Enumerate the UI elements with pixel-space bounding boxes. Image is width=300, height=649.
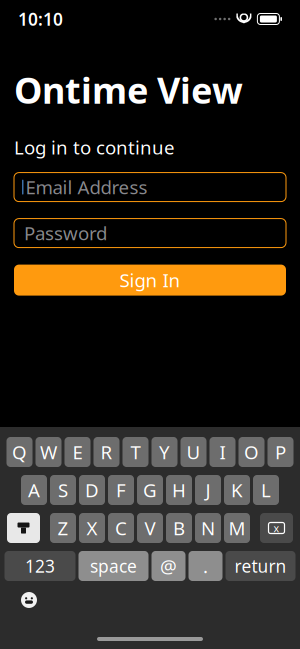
button[interactable]: Delete — [260, 513, 293, 543]
staticText: L — [261, 478, 271, 502]
button[interactable]: L — [253, 475, 279, 505]
staticText: H — [172, 478, 186, 502]
staticText: Password — [24, 221, 107, 245]
button[interactable]: R — [93, 437, 119, 467]
button[interactable]: P — [267, 437, 293, 467]
button[interactable]: B — [166, 513, 192, 543]
button[interactable]: Password — [14, 219, 286, 248]
staticText: C — [115, 516, 127, 540]
staticText: Y — [159, 440, 170, 464]
button[interactable]: Shift — [7, 513, 40, 543]
staticText: . — [203, 554, 208, 578]
button[interactable]: G — [137, 475, 163, 505]
button[interactable]: M — [224, 513, 250, 543]
button[interactable]: Emoji — [16, 587, 42, 613]
staticText: Sign In — [119, 268, 180, 292]
button[interactable]: V — [137, 513, 163, 543]
button[interactable]: N — [195, 513, 221, 543]
button[interactable]: T — [122, 437, 148, 467]
button[interactable]: Email Address — [14, 173, 286, 202]
staticText: I — [219, 440, 225, 464]
staticText: 123 — [25, 554, 55, 577]
staticText: V — [144, 516, 155, 540]
staticText: K — [231, 478, 243, 502]
staticText: @ — [160, 554, 177, 578]
button[interactable]: U — [180, 437, 206, 467]
button[interactable]: E — [64, 437, 90, 467]
button[interactable]: @ — [151, 551, 185, 581]
button[interactable]: I — [209, 437, 235, 467]
button[interactable]: O — [238, 437, 264, 467]
staticText: Q — [12, 440, 27, 464]
button[interactable]: C — [108, 513, 134, 543]
button[interactable]: F — [108, 475, 134, 505]
staticText: G — [143, 478, 157, 502]
button[interactable]: X — [79, 513, 105, 543]
staticText: U — [186, 440, 200, 464]
button[interactable]: W — [35, 437, 61, 467]
button[interactable]: A — [21, 475, 47, 505]
staticText: E — [72, 440, 82, 464]
staticText: X — [86, 516, 97, 540]
staticText: A — [28, 478, 40, 502]
staticText: N — [201, 516, 215, 540]
staticText: space — [90, 554, 137, 577]
staticText: F — [116, 478, 126, 502]
staticText: Ontime View — [14, 66, 243, 114]
staticText: Email Address — [25, 175, 147, 199]
staticText: Log in to continue — [14, 135, 175, 160]
staticText: R — [100, 440, 112, 464]
staticText: S — [58, 478, 68, 502]
staticText: return — [234, 554, 286, 577]
button[interactable]: S — [50, 475, 76, 505]
button[interactable]: D — [79, 475, 105, 505]
staticText: P — [275, 440, 286, 464]
staticText: W — [40, 440, 57, 464]
staticText: B — [173, 516, 185, 540]
staticText: O — [244, 440, 259, 464]
button[interactable]: Q — [6, 437, 32, 467]
button[interactable]: J — [195, 475, 221, 505]
staticText: T — [130, 440, 140, 464]
button[interactable]: . — [188, 551, 222, 581]
staticText: 10:10 — [18, 7, 63, 30]
button[interactable]: space — [78, 551, 148, 581]
staticText: Z — [57, 516, 68, 540]
button[interactable]: return — [225, 551, 295, 581]
button[interactable]: K — [224, 475, 250, 505]
button[interactable]: H — [166, 475, 192, 505]
staticText: x — [273, 521, 279, 535]
button[interactable]: 123 — [4, 551, 75, 581]
button[interactable]: Sign In — [14, 265, 286, 296]
button[interactable]: Z — [50, 513, 76, 543]
staticText: D — [85, 478, 99, 502]
button[interactable]: Y — [151, 437, 177, 467]
staticText: J — [205, 478, 210, 502]
staticText: M — [228, 516, 245, 540]
